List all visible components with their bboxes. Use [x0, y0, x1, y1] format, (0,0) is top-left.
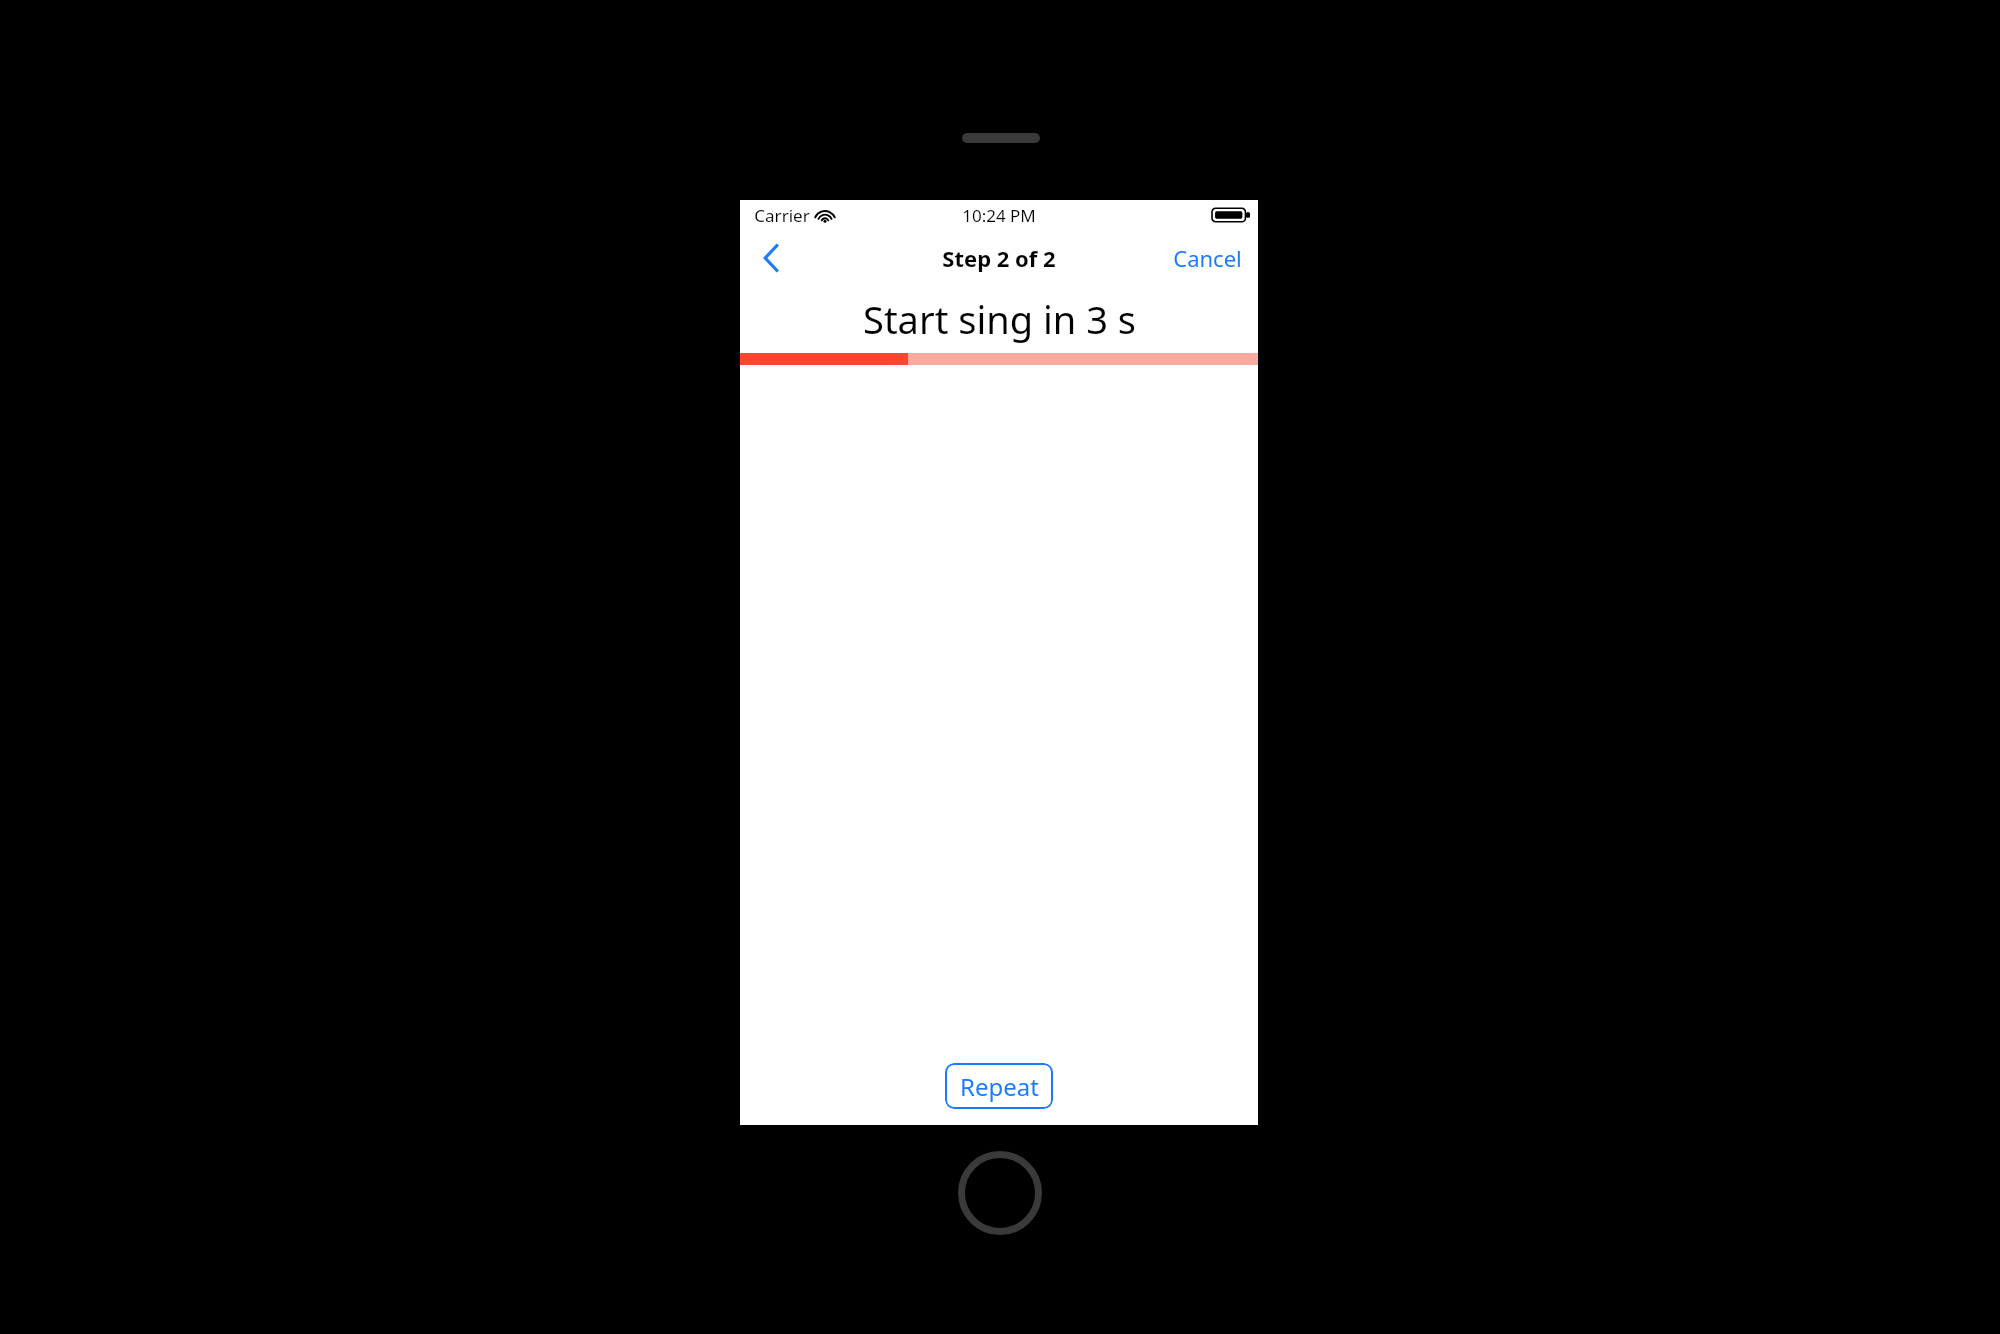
button[interactable]: Back: [740, 230, 802, 285]
button[interactable]: Home: [958, 1151, 1042, 1235]
button[interactable]: Cancel: [1157, 230, 1258, 285]
button[interactable]: Repeat: [945, 1063, 1053, 1109]
staticText: Step 2 of 2: [942, 243, 1056, 273]
staticText: 10:24 PM: [962, 204, 1036, 227]
staticText: Repeat: [960, 1070, 1039, 1103]
staticText: Cancel: [1173, 243, 1242, 273]
staticText: Start sing in 3 s: [863, 293, 1136, 343]
staticText: Carrier: [754, 204, 810, 227]
